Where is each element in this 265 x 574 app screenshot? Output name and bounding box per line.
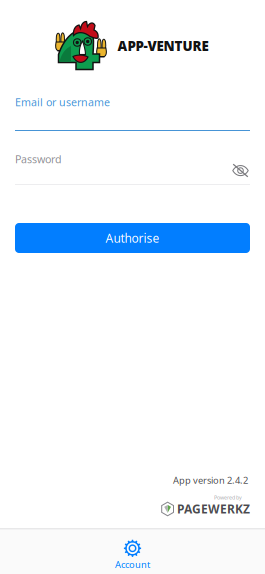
staticText: APP-VENTURE [117, 35, 208, 53]
staticText: Password [15, 152, 62, 166]
staticText: Account [115, 558, 150, 571]
staticText: Powered by [214, 494, 242, 501]
staticText: APP-VENTURE [116, 38, 207, 56]
staticText: APP-VENTURE [119, 36, 210, 53]
staticText: APP-VENTURE [117, 38, 208, 56]
button[interactable]: Show password [228, 159, 253, 182]
staticText: APP-VENTURE [116, 36, 207, 53]
staticText: Authorise [105, 230, 159, 246]
staticText: PAGEWERKZ [177, 501, 250, 517]
button[interactable]: Account [0, 529, 265, 574]
staticText: App version 2.4.2 [173, 474, 248, 486]
staticText: APP-VENTURE [119, 38, 210, 56]
button[interactable]: Authorise [15, 223, 250, 253]
staticText: APP-VENTURE [117, 37, 208, 55]
staticText: APP-VENTURE [119, 37, 210, 55]
staticText: Email or username [15, 95, 110, 109]
staticText: APP-VENTURE [116, 37, 207, 55]
